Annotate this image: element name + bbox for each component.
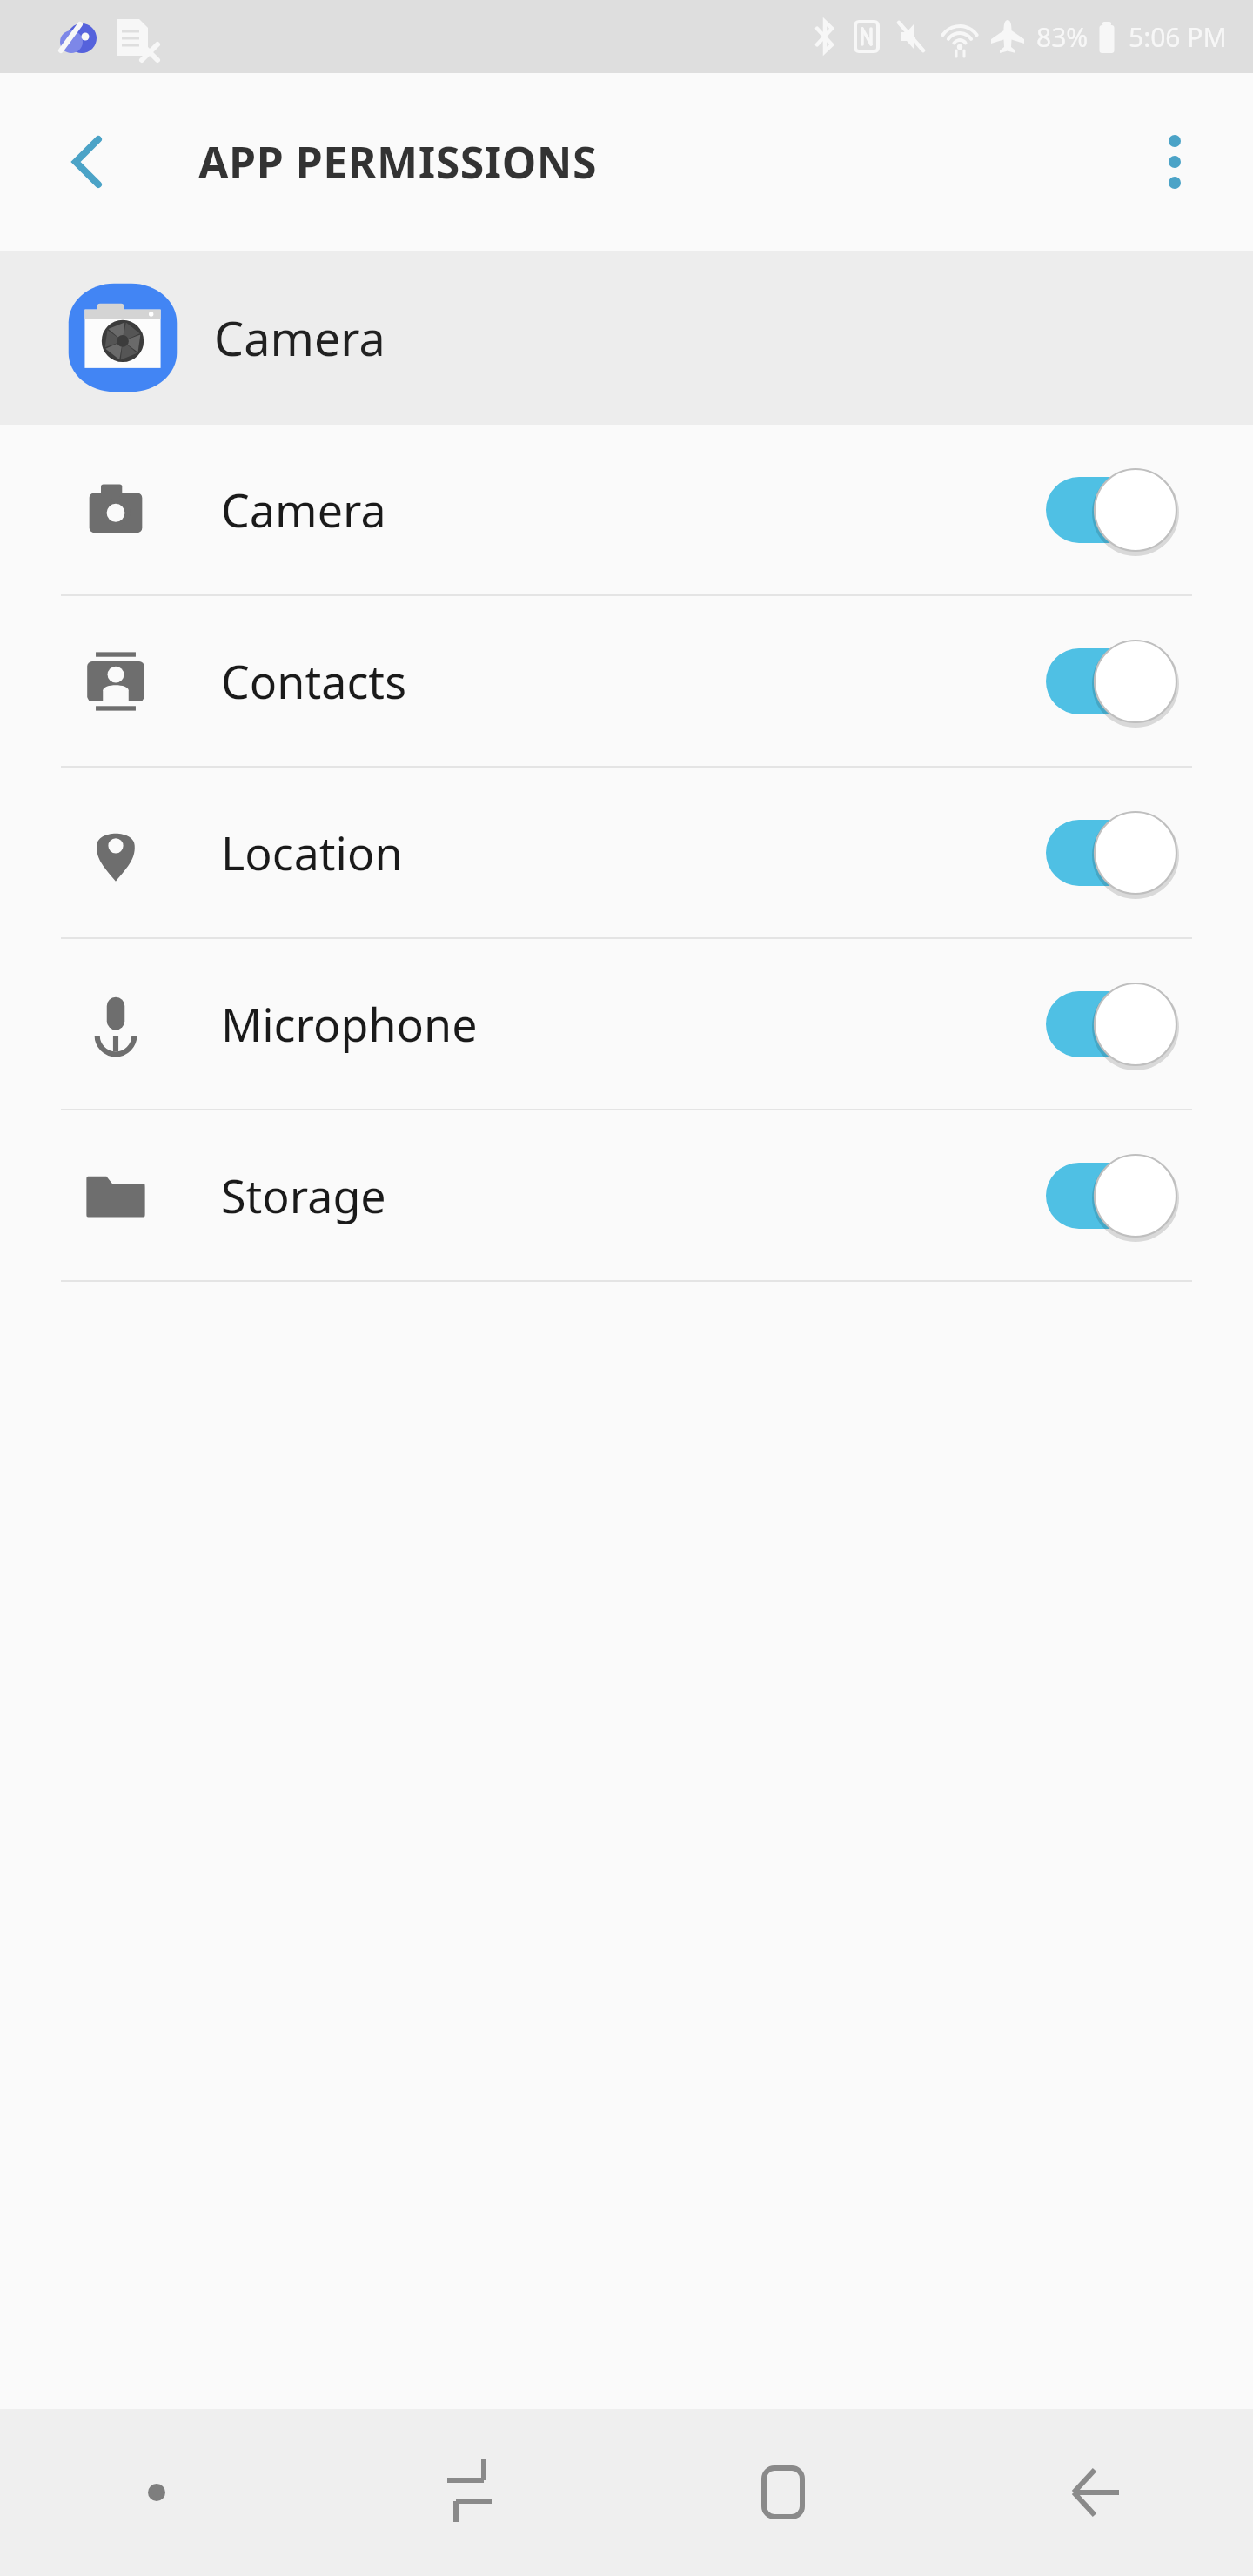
staticText: APP PERMISSIONS [198, 132, 597, 191]
staticText: Camera [214, 305, 385, 370]
staticText: Contacts [221, 650, 407, 712]
button[interactable]: Back [940, 2409, 1253, 2576]
button[interactable]: Camera [0, 251, 1253, 425]
button[interactable]: Storage [0, 1110, 1253, 1280]
button[interactable]: Contacts [0, 596, 1253, 766]
button[interactable]: Location [0, 768, 1253, 937]
button[interactable]: Permission toggle, on [1044, 462, 1192, 558]
staticText: 83% [1036, 19, 1089, 55]
button[interactable]: Keyboard indicator [0, 2409, 313, 2576]
staticText: Storage [221, 1164, 386, 1226]
button[interactable]: Microphone [0, 939, 1253, 1109]
button[interactable]: Back [40, 118, 127, 205]
staticText: Location [221, 822, 403, 883]
staticText: Camera [221, 479, 386, 540]
button[interactable]: Home [626, 2409, 940, 2576]
button[interactable]: Permission toggle, on [1044, 1148, 1192, 1244]
button[interactable]: Permission toggle, on [1044, 805, 1192, 901]
button[interactable]: Permission toggle, on [1044, 634, 1192, 729]
button[interactable]: Recent apps [313, 2409, 626, 2576]
staticText: Microphone [221, 993, 478, 1055]
button[interactable]: Permission toggle, on [1044, 976, 1192, 1072]
button[interactable]: More options [1128, 115, 1222, 209]
staticText: 5:06 PM [1129, 19, 1227, 55]
button[interactable]: Camera [0, 425, 1253, 594]
